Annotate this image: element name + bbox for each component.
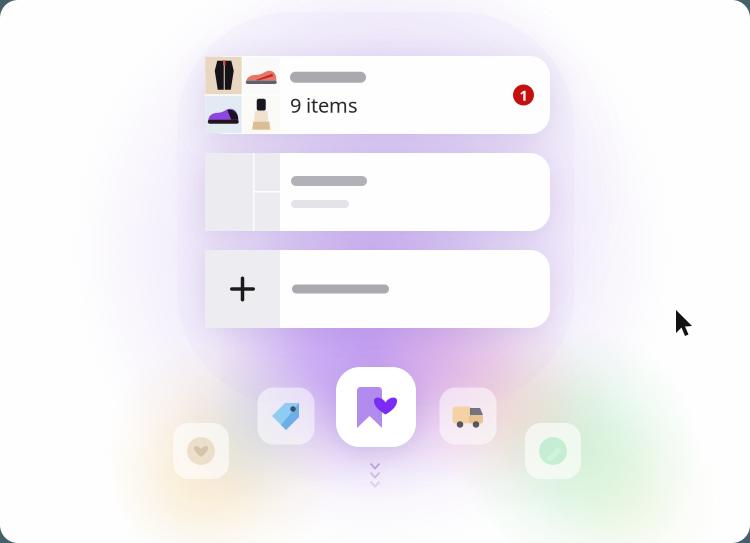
button[interactable]: Saved — [336, 367, 416, 447]
staticText: 9 items — [290, 92, 358, 118]
button[interactable]: 9 items — [205, 56, 550, 134]
button[interactable] — [205, 153, 550, 231]
button[interactable]: Deals — [257, 387, 314, 444]
button[interactable]: Collections — [525, 423, 581, 479]
button[interactable]: Favourites — [173, 423, 229, 479]
button[interactable]: Delivery — [439, 387, 496, 444]
button[interactable] — [205, 250, 550, 328]
staticText: 1 — [519, 85, 527, 105]
